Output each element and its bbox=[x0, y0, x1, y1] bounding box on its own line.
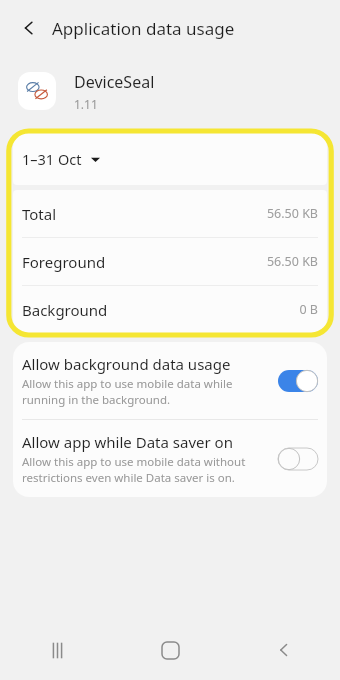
staticText: Allow app while Data saver on bbox=[22, 432, 233, 452]
staticText: DeviceSeal bbox=[74, 71, 155, 93]
staticText: Foreground bbox=[22, 252, 106, 272]
button[interactable]: Total bbox=[13, 190, 327, 237]
button[interactable]: Home bbox=[114, 620, 227, 680]
staticText: 56.50 KB bbox=[266, 253, 318, 270]
button[interactable]: Off bbox=[278, 448, 318, 470]
button[interactable]: Background bbox=[13, 286, 327, 333]
button[interactable]: Allow app while Data saver on bbox=[13, 420, 327, 497]
staticText: Allow background data usage bbox=[22, 354, 231, 374]
button[interactable]: Allow background data usage bbox=[13, 342, 327, 419]
staticText: Allow this app to use mobile data while … bbox=[22, 376, 268, 407]
staticText: Total bbox=[22, 204, 57, 224]
staticText: 56.50 KB bbox=[266, 205, 318, 222]
staticText: 1–31 Oct bbox=[22, 149, 82, 169]
button[interactable]: Foreground bbox=[13, 238, 327, 285]
button[interactable]: 1–31 Oct bbox=[13, 133, 327, 185]
staticText: 0 B bbox=[299, 301, 318, 318]
button[interactable]: Recent apps bbox=[0, 620, 114, 680]
button[interactable]: Back bbox=[227, 620, 340, 680]
staticText: Application data usage bbox=[52, 17, 235, 40]
staticText: 1.11 bbox=[74, 96, 98, 112]
staticText: Allow this app to use mobile data withou… bbox=[22, 454, 268, 485]
button[interactable]: Back bbox=[14, 13, 44, 43]
button[interactable]: On bbox=[278, 370, 318, 392]
staticText: Background bbox=[22, 300, 108, 320]
